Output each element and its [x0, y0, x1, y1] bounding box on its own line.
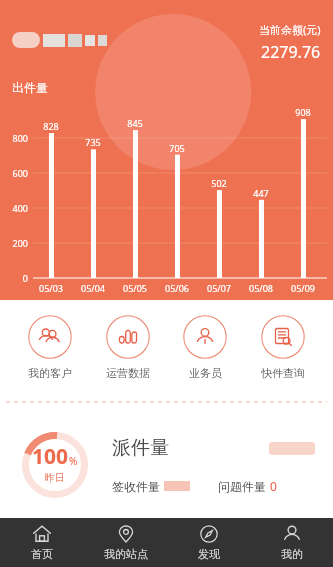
button[interactable]: 快件查询 — [255, 313, 311, 382]
staticText: 业务员 — [189, 366, 222, 380]
staticText: 447 — [240, 187, 282, 199]
staticText: 首页 — [31, 547, 53, 561]
button[interactable]: 我的站点 — [84, 518, 167, 567]
staticText: 05/08 — [240, 282, 282, 294]
staticText: 05/09 — [282, 282, 324, 294]
staticText: 我的客户 — [28, 366, 72, 380]
staticText: 发现 — [198, 547, 220, 561]
staticText: 05/07 — [198, 282, 240, 294]
staticText: 705 — [156, 142, 198, 154]
staticText: 908 — [282, 106, 324, 118]
staticText: 05/03 — [30, 282, 72, 294]
button[interactable]: 我的 — [250, 518, 333, 567]
button[interactable]: 100 — [0, 415, 333, 515]
button[interactable]: 运营数据 — [100, 313, 156, 382]
staticText: 快件查询 — [261, 366, 305, 380]
staticText: 问题件量 — [218, 478, 270, 494]
staticText: 502 — [198, 177, 240, 189]
staticText: 845 — [114, 117, 156, 129]
button[interactable]: 业务员 — [177, 313, 233, 382]
staticText: 828 — [30, 120, 72, 132]
staticText: 0 — [270, 478, 277, 494]
staticText: 运营数据 — [106, 366, 150, 380]
staticText: 我的站点 — [104, 547, 148, 561]
staticText: 05/06 — [156, 282, 198, 294]
staticText: 200 — [0, 237, 28, 249]
staticText: 0 — [0, 272, 28, 284]
staticText: 05/04 — [72, 282, 114, 294]
staticText: 当前余额(元) — [259, 22, 321, 37]
staticText: 600 — [0, 167, 28, 179]
staticText: 出件量 — [12, 80, 48, 95]
button[interactable]: 发现 — [167, 518, 250, 567]
staticText: 2279.76 — [261, 41, 321, 63]
staticText: 400 — [0, 202, 28, 214]
staticText: 735 — [72, 136, 114, 148]
staticText: 我的 — [281, 547, 303, 561]
staticText: 05/05 — [114, 282, 156, 294]
button[interactable]: 我的客户 — [22, 313, 78, 382]
button[interactable]: 首页 — [0, 518, 84, 567]
staticText: 100 — [32, 442, 69, 471]
staticText: 800 — [0, 132, 28, 144]
staticText: 昨日 — [45, 471, 65, 484]
staticText: 派件量 — [112, 436, 169, 460]
staticText: 签收件量 — [112, 478, 164, 494]
staticText: % — [69, 454, 78, 468]
